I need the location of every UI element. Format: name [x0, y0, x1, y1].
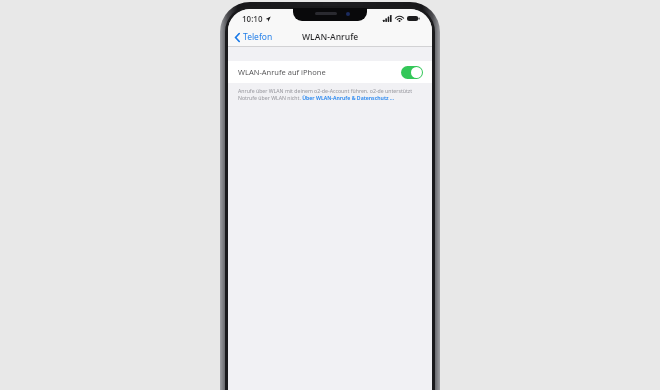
button[interactable]: WLAN-Anrufe aktiviert: [401, 66, 423, 79]
staticText: WLAN-Anrufe auf iPhone: [238, 67, 326, 77]
staticText: Anrufe über WLAN mit deinem o2-de-Accoun…: [238, 87, 420, 101]
staticText: Telefon: [243, 31, 273, 43]
button[interactable]: Telefon: [228, 28, 279, 46]
button[interactable]: WLAN-Anrufe auf iPhone: [228, 61, 432, 83]
staticText: 10:10: [242, 13, 263, 24]
staticText: WLAN-Anrufe: [302, 31, 359, 43]
